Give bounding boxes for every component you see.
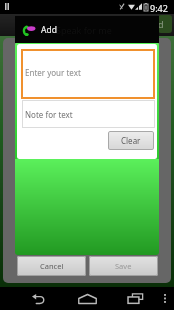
staticText: Add: [41, 24, 57, 36]
staticText: Save: [115, 261, 132, 271]
staticText: Cancel: [40, 261, 64, 271]
button[interactable]: More options: [156, 287, 174, 310]
staticText: Enter your text: [25, 67, 81, 78]
staticText: Note for text: [25, 109, 73, 120]
button[interactable]: Back: [26, 287, 50, 310]
button[interactable]: Home: [75, 287, 99, 310]
staticText: d: [158, 18, 164, 30]
button[interactable]: Enter your text: [21, 49, 155, 99]
button[interactable]: Recent apps: [123, 287, 147, 310]
staticText: Clear: [121, 135, 141, 146]
staticText: 9:42: [150, 2, 168, 14]
button[interactable]: Clear: [108, 131, 154, 150]
button[interactable]: Save: [89, 256, 158, 276]
button[interactable]: Note for text: [22, 100, 155, 128]
button[interactable]: Cancel: [17, 256, 86, 276]
staticText: Speak for me: [56, 24, 112, 36]
